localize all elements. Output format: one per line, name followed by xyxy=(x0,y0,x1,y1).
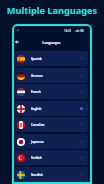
staticText: German xyxy=(31,74,43,78)
button[interactable]: French xyxy=(15,84,88,99)
staticText: Japanese xyxy=(31,140,45,144)
staticText: English xyxy=(31,107,42,111)
staticText: Spanish xyxy=(31,57,43,61)
button[interactable]: Turkish xyxy=(15,150,88,165)
button[interactable]: Back xyxy=(13,38,21,46)
staticText: 16:41 xyxy=(64,29,72,33)
button[interactable]: Canadian xyxy=(15,117,88,132)
staticText: Turkish xyxy=(31,156,42,160)
staticText: Swedish xyxy=(31,173,43,177)
button[interactable]: English xyxy=(15,101,88,116)
staticText: Canadian xyxy=(31,123,45,127)
staticText: Multiple Languages xyxy=(0,4,104,17)
button[interactable]: German xyxy=(15,68,88,83)
button[interactable]: Swedish xyxy=(15,167,88,182)
staticText: French xyxy=(31,90,41,94)
button[interactable]: Japanese xyxy=(15,134,88,149)
staticText: Languages xyxy=(15,40,88,44)
button[interactable]: Spanish xyxy=(15,51,88,66)
